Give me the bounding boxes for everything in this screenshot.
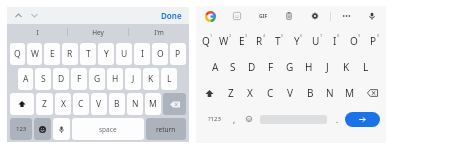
staticText: 2 [229, 33, 232, 38]
button[interactable]: K [337, 54, 356, 80]
button[interactable]: I [134, 43, 150, 65]
button[interactable]: Done [159, 10, 184, 21]
button[interactable]: O [346, 28, 365, 54]
button[interactable]: K [143, 68, 159, 90]
button[interactable]: Voice input [53, 118, 70, 140]
staticText: Done [161, 10, 182, 21]
button[interactable]: Z [221, 80, 240, 106]
button[interactable]: Emoji [34, 118, 51, 140]
staticText: V [96, 98, 102, 110]
staticText: C [267, 86, 274, 100]
button[interactable]: Backspace [163, 93, 186, 115]
button[interactable]: space [72, 118, 144, 140]
button[interactable]: Q [10, 43, 25, 65]
button[interactable]: I'm [129, 24, 189, 40]
button[interactable]: Clipboard [281, 8, 297, 24]
button[interactable]: C [73, 93, 89, 115]
button[interactable]: X [55, 93, 71, 115]
button[interactable]: Next field [28, 9, 41, 22]
staticText: S [41, 73, 46, 85]
button[interactable]: V [91, 93, 107, 115]
button[interactable]: More options [338, 8, 354, 24]
button[interactable]: L [356, 54, 375, 80]
button[interactable]: T [80, 43, 96, 65]
button[interactable]: M [145, 93, 161, 115]
staticText: Q [202, 34, 210, 48]
button[interactable]: N [127, 93, 143, 115]
button[interactable]: Shift [198, 80, 221, 106]
button[interactable]: S [35, 68, 51, 90]
button[interactable]: Q [198, 28, 216, 54]
staticText: M [149, 98, 157, 110]
button[interactable]: E [234, 28, 252, 54]
button[interactable]: R [62, 43, 78, 65]
button[interactable]: U [116, 43, 132, 65]
button[interactable]: Settings [307, 8, 323, 24]
button[interactable]: D [242, 54, 261, 80]
staticText: I [333, 34, 337, 48]
button[interactable]: G [280, 54, 299, 80]
button[interactable]: H [107, 68, 123, 90]
button[interactable]: I [327, 28, 346, 54]
button[interactable]: . [330, 106, 344, 132]
button[interactable]: U [308, 28, 327, 54]
button[interactable]: X [240, 80, 260, 106]
button[interactable]: L [161, 68, 177, 90]
button[interactable]: F [261, 54, 280, 80]
button[interactable]: Shift [10, 93, 34, 115]
button[interactable]: W [216, 28, 234, 54]
button[interactable]: S [224, 54, 242, 80]
staticText: G [286, 60, 294, 74]
button[interactable]: M [340, 80, 360, 106]
staticText: Y [294, 34, 300, 48]
button[interactable]: Previous field [12, 9, 25, 22]
staticText: J [132, 73, 135, 85]
button[interactable]: C [260, 80, 280, 106]
staticText: P [370, 34, 377, 48]
button[interactable]: G [89, 68, 105, 90]
button[interactable]: N [320, 80, 340, 106]
button[interactable]: W [27, 43, 42, 65]
button[interactable]: B [109, 93, 125, 115]
button[interactable]: return [146, 118, 186, 140]
button[interactable]: T [270, 28, 289, 54]
staticText: I [36, 28, 39, 37]
button[interactable]: Stickers [229, 8, 245, 24]
button[interactable]: O [152, 43, 168, 65]
button[interactable]: Google search [202, 8, 218, 24]
button[interactable]: Z [36, 93, 53, 115]
staticText: return [156, 125, 176, 134]
staticText: E [239, 34, 245, 48]
button[interactable]: Emoji [241, 106, 257, 132]
staticText: 9 [358, 33, 361, 38]
staticText: E [50, 48, 55, 60]
button[interactable]: GIF [255, 8, 271, 24]
button[interactable]: J [318, 54, 337, 80]
button[interactable]: E [44, 43, 60, 65]
button[interactable]: P [365, 28, 384, 54]
button[interactable]: P [170, 43, 186, 65]
button[interactable]: B [300, 80, 320, 106]
button[interactable]: F [71, 68, 87, 90]
button[interactable]: Enter [345, 112, 380, 127]
button[interactable]: Voice input [364, 8, 380, 24]
button[interactable]: Backspace [360, 80, 384, 106]
button[interactable]: Hey [68, 24, 128, 40]
staticText: N [326, 86, 334, 100]
button[interactable]: J [125, 68, 141, 90]
staticText: R [67, 48, 73, 60]
button[interactable]: I [7, 24, 67, 40]
button[interactable]: H [299, 54, 318, 80]
button[interactable]: , [227, 106, 241, 132]
button[interactable]: D [53, 68, 69, 90]
button[interactable]: V [280, 80, 300, 106]
button[interactable]: A [18, 68, 33, 90]
button[interactable]: Y [98, 43, 114, 65]
staticText: 6 [300, 33, 303, 38]
button[interactable]: 123 [10, 118, 32, 140]
button[interactable]: A [206, 54, 224, 80]
button[interactable]: ?123 [201, 106, 227, 132]
button[interactable]: Y [289, 28, 308, 54]
button[interactable]: R [252, 28, 270, 54]
